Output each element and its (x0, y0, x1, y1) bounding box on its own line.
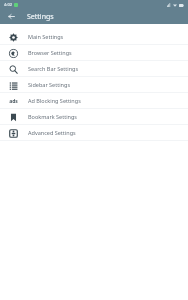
button[interactable]: Browser Settings (0, 45, 188, 60)
button[interactable]: Sidebar Settings (0, 77, 188, 92)
staticText: Settings (27, 12, 54, 22)
staticText: Bookmark Settings (28, 113, 77, 120)
staticText: Ad Blocking Settings (28, 97, 81, 104)
button[interactable]: ads (0, 93, 188, 108)
staticText: Advanced Settings (28, 129, 76, 136)
button[interactable]: Bookmark Settings (0, 109, 188, 124)
staticText: Sidebar Settings (28, 81, 71, 88)
staticText: 4:02 (4, 2, 12, 7)
staticText: Search Bar Settings (28, 65, 79, 72)
staticText: ads (9, 98, 18, 105)
button[interactable]: Advanced Settings (0, 125, 188, 140)
button[interactable]: Search Bar Settings (0, 61, 188, 76)
staticText: Main Settings (28, 33, 64, 40)
button[interactable]: Back (6, 11, 17, 22)
button[interactable]: Main Settings (0, 29, 188, 44)
staticText: Browser Settings (28, 49, 72, 56)
